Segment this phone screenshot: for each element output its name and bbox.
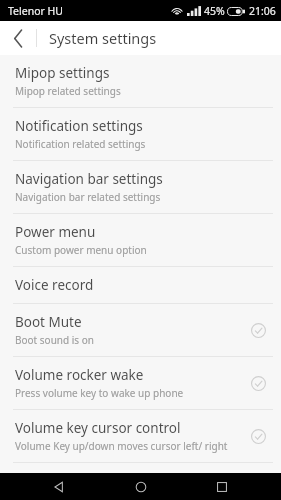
staticText: 21:06 [249,4,276,18]
staticText: Notification settings [15,117,143,135]
button[interactable]: Mipop settings [0,55,281,107]
staticText: Boot Mute [15,313,82,331]
button[interactable]: Toggle Volume rocker wake [245,370,271,396]
button[interactable]: Volume rocker wake [0,357,281,409]
staticText: 45% [204,4,225,18]
staticText: Volume key cursor control [15,419,181,437]
staticText: Volume rocker wake [15,366,144,384]
button[interactable]: Power menu [0,214,281,266]
staticText: Voice record [15,276,94,294]
button[interactable]: Toggle Volume key cursor control [245,423,271,449]
staticText: Press volume key to wake up phone [15,386,184,400]
button[interactable]: Volume key cursor control [0,410,281,462]
button[interactable]: Back [37,473,81,500]
button[interactable]: Back [0,21,36,55]
button[interactable]: Recent apps [200,473,244,500]
staticText: Custom power menu option [15,243,147,257]
staticText: Power menu [15,223,96,241]
staticText: Volume Key up/down moves cursor left/ ri… [15,439,228,453]
button[interactable]: Home [119,473,163,500]
staticText: Mipop related settings [15,84,121,98]
staticText: Telenor HU [8,4,64,18]
staticText: System settings [49,28,157,48]
button[interactable]: Navigation bar settings [0,161,281,213]
staticText: Navigation bar related settings [15,190,161,204]
staticText: Mipop settings [15,64,110,82]
staticText: Boot sound is on [15,333,94,347]
button[interactable]: Notification settings [0,108,281,160]
staticText: Notification related settings [15,137,146,151]
button[interactable]: Boot Mute [0,304,281,356]
button[interactable]: Toggle Boot Mute [245,317,271,343]
button[interactable]: Voice record [0,267,281,303]
staticText: Navigation bar settings [15,170,163,188]
